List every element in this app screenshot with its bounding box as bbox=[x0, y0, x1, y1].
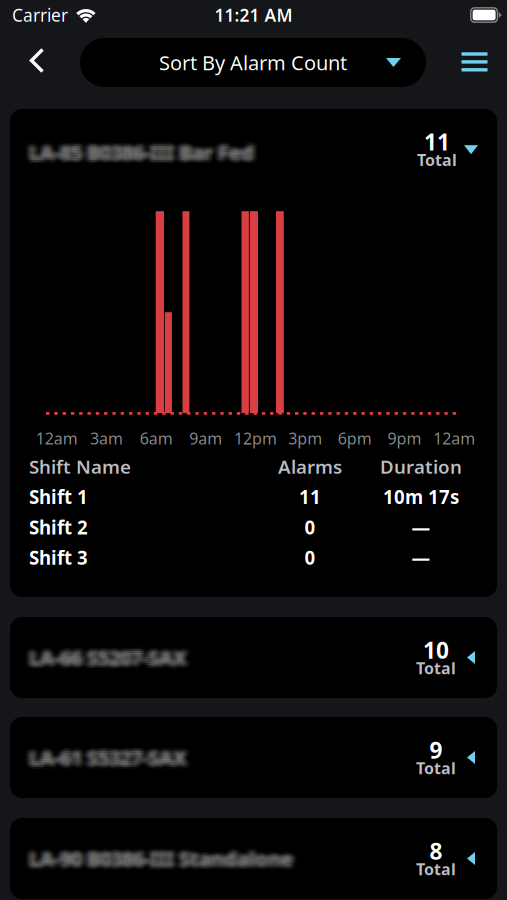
button[interactable]: Back bbox=[0, 38, 80, 87]
staticText: Total bbox=[416, 657, 456, 679]
staticText: LA-66 S5207-SAX bbox=[33, 648, 190, 674]
staticText: LA-90 B0386-III Standalone bbox=[23, 845, 287, 872]
staticText: LA-90 B0386-III Standalone bbox=[29, 847, 293, 873]
staticText: LA-90 B0386-III Standalone bbox=[31, 847, 295, 873]
staticText: 0 bbox=[304, 545, 315, 570]
staticText: LA-66 S5207-SAX bbox=[30, 641, 187, 667]
staticText: LA-61 S5327-SAX bbox=[36, 746, 193, 772]
staticText: LA-85 B0386-III Bar Fed bbox=[25, 142, 250, 169]
staticText: LA-66 S5207-SAX bbox=[22, 646, 179, 672]
staticText: LA-90 B0386-III Standalone bbox=[22, 842, 286, 868]
staticText: LA-85 B0386-III Bar Fed bbox=[22, 135, 247, 162]
staticText: LA-61 S5327-SAX bbox=[33, 741, 190, 767]
staticText: LA-61 S5327-SAX bbox=[22, 748, 179, 774]
staticText: LA-90 B0386-III Standalone bbox=[22, 843, 286, 870]
staticText: LA-85 B0386-III Bar Fed bbox=[34, 141, 259, 167]
staticText: LA-85 B0386-III Bar Fed bbox=[32, 137, 257, 164]
staticText: LA-61 S5327-SAX bbox=[34, 748, 191, 774]
staticText: 3am bbox=[90, 428, 123, 449]
staticText: LA-85 B0386-III Bar Fed bbox=[34, 142, 259, 169]
staticText: 12am bbox=[433, 428, 475, 449]
staticText: LA-85 B0386-III Bar Fed bbox=[30, 139, 255, 165]
staticText: LA-61 S5327-SAX bbox=[31, 748, 188, 774]
staticText: LA-90 B0386-III Standalone bbox=[32, 847, 296, 873]
staticText: LA-90 B0386-III Standalone bbox=[33, 845, 297, 872]
staticText: LA-61 S5327-SAX bbox=[33, 744, 190, 771]
staticText: LA-66 S5207-SAX bbox=[23, 648, 180, 674]
staticText: LA-61 S5327-SAX bbox=[36, 748, 193, 774]
staticText: LA-85 B0386-III Bar Fed bbox=[29, 135, 254, 162]
staticText: LA-90 B0386-III Standalone bbox=[34, 842, 298, 868]
staticText: LA-61 S5327-SAX bbox=[23, 742, 180, 769]
staticText: LA-66 S5207-SAX bbox=[33, 644, 190, 671]
staticText: LA-90 B0386-III Standalone bbox=[27, 849, 291, 875]
staticText: LA-90 B0386-III Standalone bbox=[23, 847, 287, 873]
staticText: LA-61 S5327-SAX bbox=[28, 742, 185, 769]
staticText: LA-85 B0386-III Bar Fed bbox=[31, 137, 256, 164]
staticText: LA-90 B0386-III Standalone bbox=[33, 847, 297, 873]
staticText: LA-61 S5327-SAX bbox=[34, 741, 191, 767]
button[interactable]: LA-66 S5207-SAX bbox=[10, 617, 497, 698]
staticText: LA-66 S5207-SAX bbox=[32, 641, 189, 667]
staticText: 0 bbox=[304, 515, 315, 540]
staticText: LA-66 S5207-SAX bbox=[31, 644, 188, 671]
staticText: LA-61 S5327-SAX bbox=[23, 741, 180, 767]
staticText: LA-61 S5327-SAX bbox=[26, 744, 183, 771]
staticText: LA-85 B0386-III Bar Fed bbox=[25, 141, 250, 167]
staticText: LA-85 B0386-III Bar Fed bbox=[34, 135, 259, 162]
staticText: LA-85 B0386-III Bar Fed bbox=[26, 142, 251, 169]
staticText: Total bbox=[416, 757, 456, 779]
staticText: LA-85 B0386-III Bar Fed bbox=[23, 142, 248, 169]
staticText: LA-66 S5207-SAX bbox=[28, 642, 185, 669]
staticText: LA-90 B0386-III Standalone bbox=[25, 849, 289, 875]
staticText: LA-90 B0386-III Standalone bbox=[28, 845, 292, 872]
staticText: LA-85 B0386-III Bar Fed bbox=[33, 137, 258, 164]
staticText: LA-66 S5207-SAX bbox=[27, 646, 184, 672]
staticText: LA-90 B0386-III Standalone bbox=[28, 847, 292, 873]
staticText: LA-66 S5207-SAX bbox=[28, 646, 185, 672]
staticText: LA-66 S5207-SAX bbox=[34, 641, 191, 667]
staticText: Shift 3 bbox=[29, 545, 88, 570]
button[interactable]: LA-90 B0386-III Standalone bbox=[10, 818, 497, 899]
staticText: 10 bbox=[423, 635, 449, 665]
staticText: 12am bbox=[36, 428, 78, 449]
staticText: LA-66 S5207-SAX bbox=[27, 642, 184, 669]
button[interactable]: LA-61 S5327-SAX bbox=[10, 717, 497, 798]
button[interactable]: Sort By Alarm Count bbox=[80, 38, 426, 87]
staticText: LA-85 B0386-III Bar Fed bbox=[30, 142, 255, 169]
staticText: 3pm bbox=[288, 428, 322, 449]
staticText: Duration bbox=[380, 454, 462, 479]
staticText: Alarms bbox=[278, 454, 342, 479]
staticText: LA-61 S5327-SAX bbox=[32, 748, 189, 774]
staticText: LA-90 B0386-III Standalone bbox=[30, 842, 294, 868]
staticText: LA-61 S5327-SAX bbox=[25, 748, 182, 774]
staticText: LA-61 S5327-SAX bbox=[31, 741, 188, 767]
staticText: LA-61 S5327-SAX bbox=[30, 746, 187, 772]
staticText: LA-85 B0386-III Bar Fed bbox=[26, 135, 251, 162]
staticText: LA-61 S5327-SAX bbox=[26, 741, 183, 767]
staticText: LA-66 S5207-SAX bbox=[26, 648, 183, 674]
staticText: LA-90 B0386-III Standalone bbox=[29, 849, 293, 875]
staticText: LA-61 S5327-SAX bbox=[27, 748, 184, 774]
staticText: LA-85 B0386-III Bar Fed bbox=[29, 139, 254, 165]
staticText: LA-85 B0386-III Bar Fed bbox=[32, 135, 257, 162]
button[interactable]: Menu bbox=[426, 38, 507, 87]
staticText: LA-66 S5207-SAX bbox=[32, 644, 189, 671]
staticText: LA-61 S5327-SAX bbox=[36, 742, 193, 769]
staticText: LA-85 B0386-III Bar Fed bbox=[33, 142, 258, 169]
staticText: LA-90 B0386-III Standalone bbox=[36, 843, 300, 870]
staticText: LA-90 B0386-III Standalone bbox=[28, 842, 292, 868]
staticText: LA-61 S5327-SAX bbox=[29, 748, 186, 774]
staticText: LA-90 B0386-III Standalone bbox=[22, 849, 286, 875]
staticText: Sort By Alarm Count bbox=[159, 49, 347, 76]
staticText: 9pm bbox=[387, 428, 421, 449]
staticText: LA-61 S5327-SAX bbox=[36, 741, 193, 767]
staticText: 11 bbox=[299, 484, 321, 509]
staticText: LA-85 B0386-III Bar Fed bbox=[36, 141, 261, 167]
staticText: LA-85 B0386-III Bar Fed bbox=[22, 137, 247, 164]
staticText: LA-85 B0386-III Bar Fed bbox=[28, 135, 253, 162]
staticText: LA-90 B0386-III Standalone bbox=[28, 849, 292, 875]
staticText: LA-85 B0386-III Bar Fed bbox=[22, 142, 247, 169]
staticText: LA-90 B0386-III Standalone bbox=[27, 843, 291, 870]
staticText: LA-61 S5327-SAX bbox=[30, 748, 187, 774]
